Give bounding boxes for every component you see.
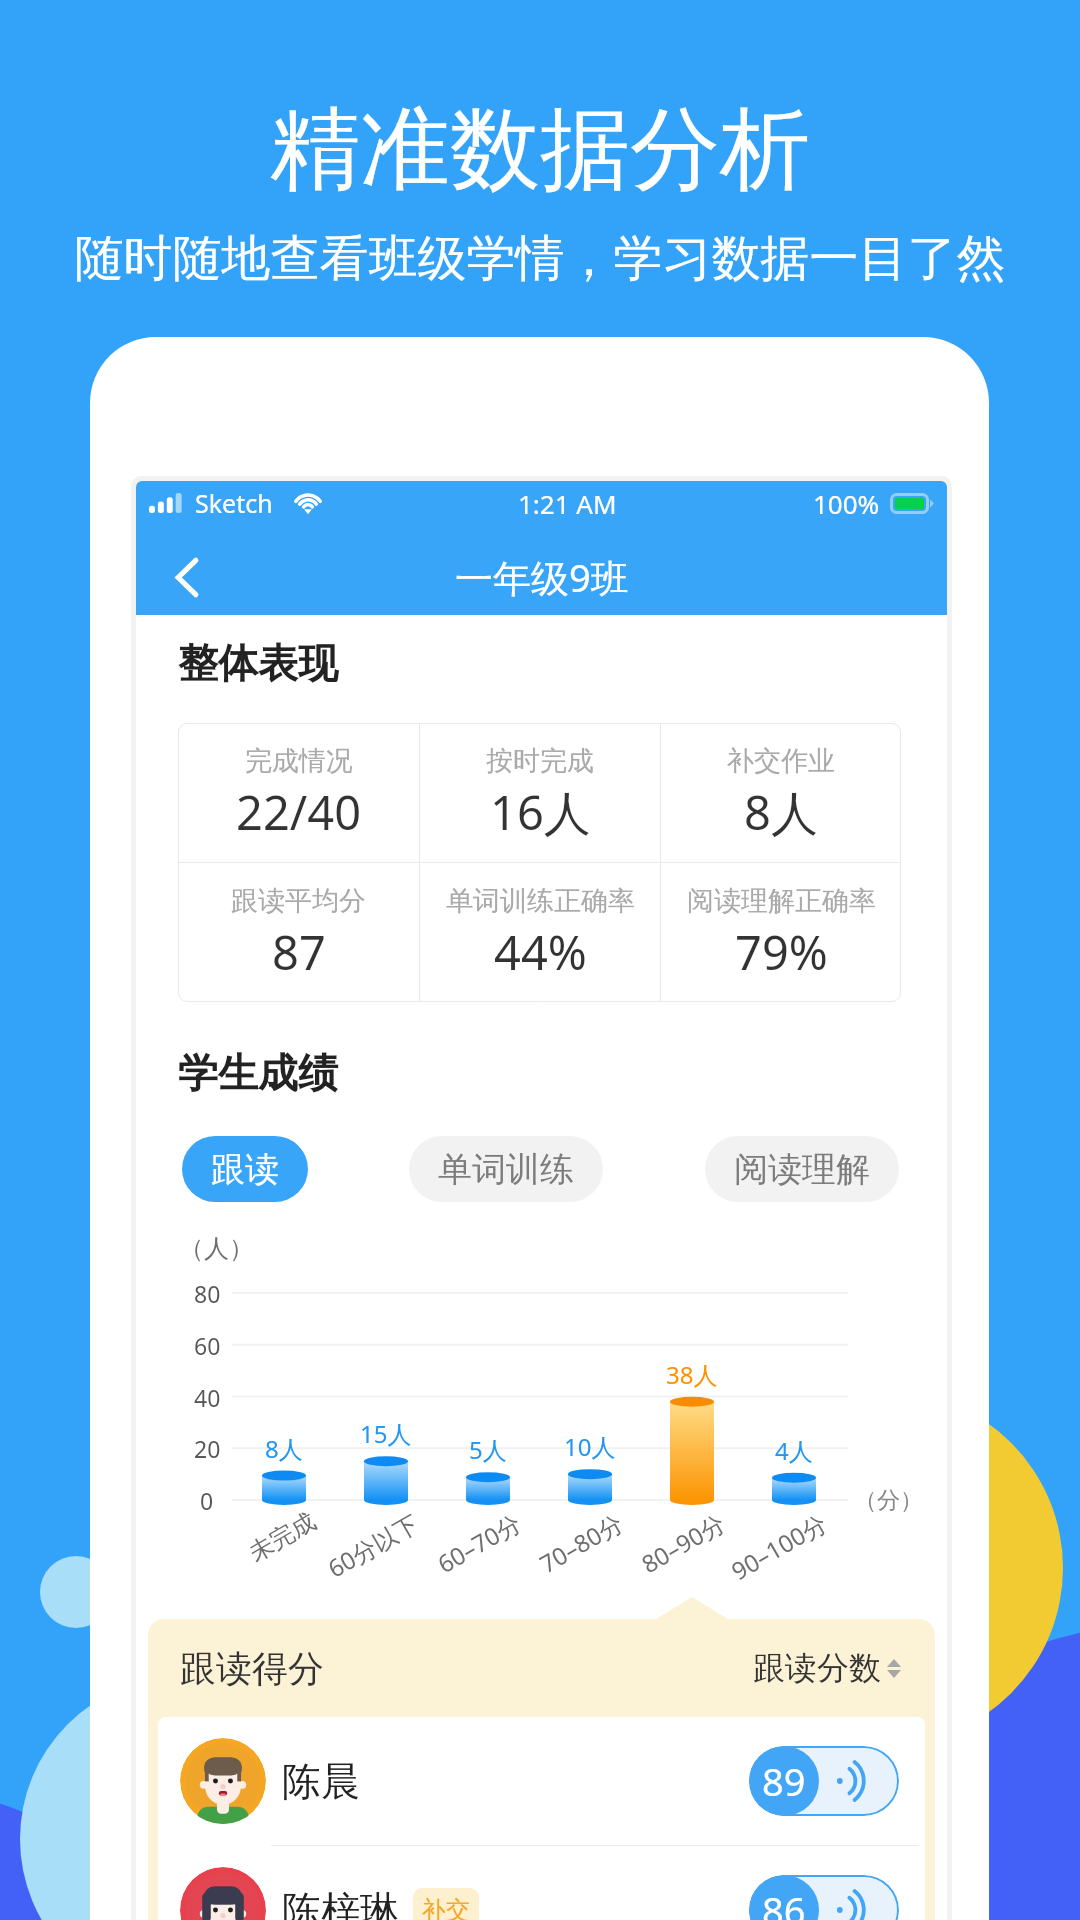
staticText: 40 [194,1382,221,1413]
staticText: 80–90分 [635,1506,730,1580]
staticText: 15人 [360,1417,412,1450]
staticText: 跟读得分 [180,1646,324,1691]
staticText: （人） [179,1233,254,1264]
staticText: 22/40 [236,780,362,844]
staticText: 0 [200,1485,214,1516]
staticText: 89 [762,1755,806,1807]
staticText: 16人 [490,780,591,844]
staticText: 20 [194,1433,221,1464]
staticText: 10人 [564,1430,616,1463]
staticText: 38人 [666,1358,718,1391]
button[interactable]: 单词训练 [409,1136,603,1202]
staticText: 随时随地查看班级学情，学习数据一目了然 [0,228,1080,290]
staticText: 跟读 [211,1148,279,1191]
staticText: 完成情况 [245,744,353,778]
staticText: 86 [762,1884,806,1920]
staticText: 4人 [775,1434,813,1467]
staticText: 80 [194,1278,221,1309]
staticText: 跟读分数 [753,1648,881,1688]
button[interactable]: 陈梓琳 [158,1846,925,1920]
staticText: 跟读平均分 [231,884,366,918]
staticText: 陈梓琳 [282,1886,399,1920]
staticText: 单词训练正确率 [446,884,635,918]
staticText: 阅读理解正确率 [687,884,876,918]
staticText: 学生成绩 [178,1048,338,1098]
staticText: 90–100分 [725,1506,832,1587]
staticText: 79% [735,920,828,984]
staticText: 未完成 [244,1506,321,1568]
button[interactable]: 跟读 [182,1136,308,1202]
staticText: 70–80分 [533,1506,628,1580]
staticText: 阅读理解 [734,1148,870,1191]
button[interactable]: 阅读理解 [705,1136,899,1202]
button[interactable]: Back [158,548,216,606]
staticText: Sketch [195,486,273,520]
staticText: （分） [854,1486,923,1515]
button[interactable]: 86 [749,1875,899,1920]
staticText: 单词训练 [438,1148,574,1191]
staticText: 60 [194,1330,221,1361]
staticText: 60分以下 [321,1506,424,1585]
button[interactable]: 跟读分数 [753,1648,901,1688]
button[interactable]: 89 [749,1746,899,1816]
staticText: 8人 [265,1432,303,1465]
button[interactable]: 陈晨 [158,1717,925,1845]
staticText: 44% [494,920,587,984]
staticText: 100% [813,486,880,521]
staticText: 精准数据分析 [0,93,1080,206]
staticText: 一年级9班 [455,551,629,603]
staticText: 87 [272,920,326,984]
staticText: 整体表现 [178,638,338,688]
staticText: 1:21 AM [518,486,617,521]
staticText: 补交 [422,1895,470,1920]
staticText: 5人 [469,1433,507,1466]
staticText: 60–70分 [431,1506,526,1580]
staticText: 补交作业 [727,744,835,778]
staticText: 陈晨 [282,1757,360,1806]
staticText: 按时完成 [486,744,594,778]
staticText: 8人 [744,780,818,844]
